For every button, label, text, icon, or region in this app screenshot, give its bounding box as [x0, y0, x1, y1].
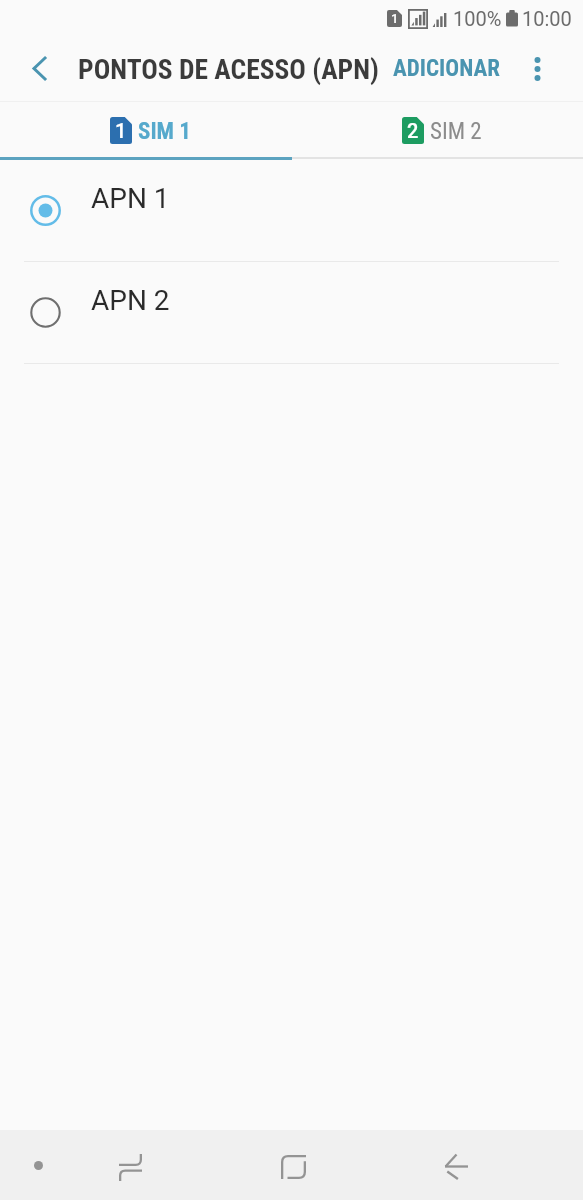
button[interactable]: APN 2 [0, 262, 583, 363]
staticText: PONTOS DE ACESSO (APN) [78, 53, 379, 85]
button[interactable]: Home [253, 1130, 333, 1200]
button[interactable]: 1 [0, 102, 291, 155]
staticText: SIM 2 [430, 118, 482, 145]
staticText: 2 [407, 119, 419, 142]
button[interactable]: Back [416, 1130, 496, 1200]
staticText: 1 [115, 119, 127, 142]
staticText: 1 [391, 11, 399, 26]
button[interactable]: More options [513, 36, 561, 101]
button[interactable]: Recent apps [90, 1130, 170, 1200]
button[interactable]: APN 1 [0, 160, 583, 261]
button[interactable]: Menu [6, 1130, 70, 1200]
staticText: APN 1 [91, 182, 170, 215]
staticText: ADICIONAR [393, 55, 500, 82]
staticText: 100% [453, 7, 502, 30]
staticText: SIM 1 [138, 118, 191, 145]
button[interactable]: Back [0, 36, 68, 101]
staticText: 10:00 [522, 7, 572, 30]
button[interactable]: 2 [291, 102, 583, 155]
staticText: APN 2 [91, 284, 170, 317]
button[interactable]: ADICIONAR [384, 36, 509, 101]
